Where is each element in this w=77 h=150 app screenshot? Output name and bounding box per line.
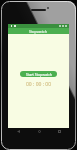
staticText: Stopwatch	[29, 29, 48, 34]
button[interactable]: Recent apps	[55, 127, 63, 135]
button[interactable]: Home	[35, 127, 43, 135]
button[interactable]: Back	[14, 127, 22, 135]
button[interactable]: Stopwatch	[8, 28, 69, 34]
staticText: 00 : 00 : 00	[26, 81, 52, 88]
button[interactable]: Start Stopwatch	[20, 71, 57, 77]
staticText: Start Stopwatch	[26, 72, 52, 77]
